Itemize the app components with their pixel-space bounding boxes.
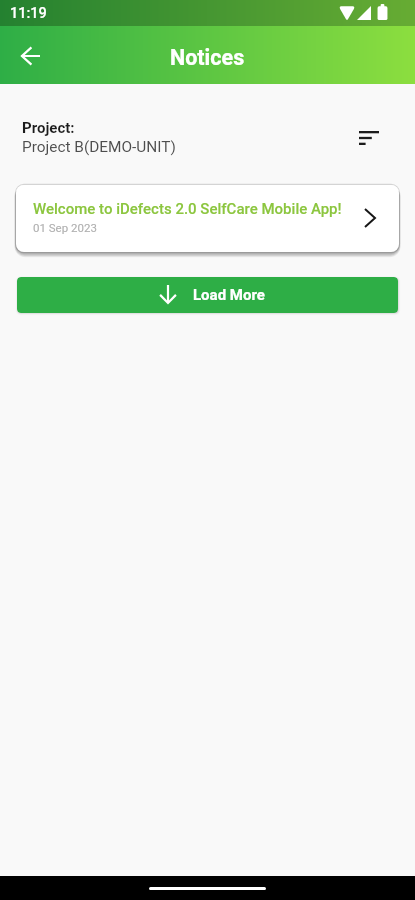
staticText: 11:19 bbox=[10, 5, 47, 22]
button[interactable]: Back bbox=[9, 34, 52, 77]
button[interactable]: Welcome to iDefects 2.0 SelfCare Mobile … bbox=[16, 185, 399, 252]
button[interactable]: Load More bbox=[17, 277, 398, 313]
staticText: Load More bbox=[193, 286, 265, 304]
staticText: Notices bbox=[170, 45, 245, 70]
staticText: Project B(DEMO-UNIT) bbox=[22, 138, 176, 156]
staticText: Project: bbox=[22, 119, 75, 137]
staticText: Welcome to iDefects 2.0 SelfCare Mobile … bbox=[33, 200, 342, 218]
staticText: 01 Sep 2023 bbox=[33, 221, 97, 234]
button[interactable]: Filter bbox=[354, 121, 384, 155]
